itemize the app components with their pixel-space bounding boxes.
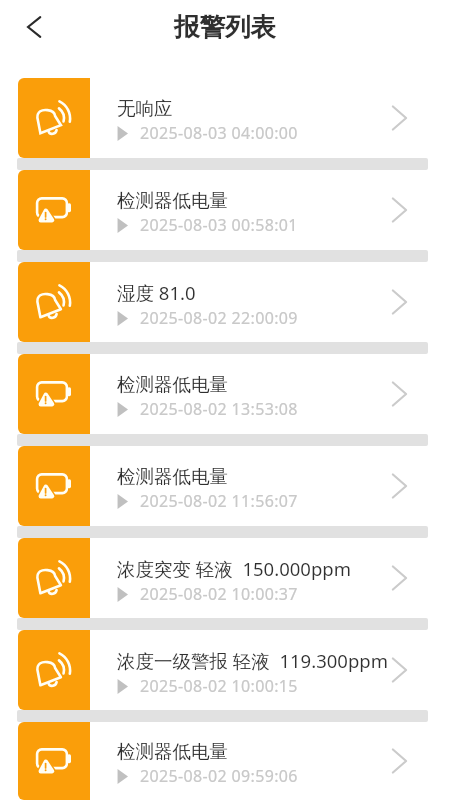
staticText: 报警列表	[174, 11, 276, 43]
staticText: 湿度 81.0	[117, 280, 196, 305]
staticText: 2025-08-02 11:56:07	[140, 490, 298, 512]
staticText: 检测器低电量	[117, 465, 228, 488]
button[interactable]: 浓度一级警报 轻液 119.300ppm	[18, 630, 432, 710]
button[interactable]: 无响应	[18, 78, 432, 158]
staticText: 2025-08-03 04:00:00	[140, 122, 298, 144]
staticText: 2025-08-02 10:00:37	[140, 583, 298, 605]
button[interactable]: 检测器低电量	[18, 170, 432, 250]
staticText: 浓度突变 轻液 150.000ppm	[117, 556, 351, 581]
staticText: 检测器低电量	[117, 740, 228, 763]
staticText: 无响应	[117, 97, 173, 120]
staticText: 2025-08-02 10:00:15	[140, 675, 298, 697]
staticText: 2025-08-02 22:00:09	[140, 307, 298, 329]
button[interactable]: 检测器低电量	[18, 446, 432, 526]
button[interactable]: 检测器低电量	[18, 354, 432, 434]
button[interactable]: 浓度突变 轻液 150.000ppm	[18, 538, 432, 618]
staticText: 检测器低电量	[117, 373, 228, 396]
staticText: 2025-08-02 13:53:08	[140, 398, 298, 420]
staticText: 2025-08-03 00:58:01	[140, 214, 298, 236]
staticText: 浓度一级警报 轻液 119.300ppm	[117, 648, 388, 673]
button[interactable]: 湿度 81.0	[18, 262, 432, 342]
button[interactable]: 检测器低电量	[18, 722, 432, 800]
staticText: 2025-08-02 09:59:06	[140, 765, 298, 787]
staticText: 检测器低电量	[117, 189, 228, 212]
button[interactable]: Back	[18, 10, 52, 44]
